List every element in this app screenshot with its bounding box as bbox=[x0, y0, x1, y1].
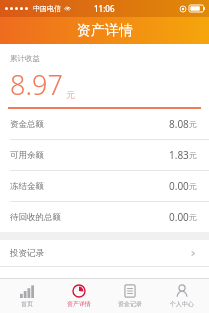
staticText: 资金记录 bbox=[118, 300, 142, 308]
staticText: 待回收的总额 bbox=[10, 212, 61, 223]
staticText: 资产详情 bbox=[67, 300, 91, 308]
button[interactable]: 冻结金额 bbox=[0, 171, 209, 201]
staticText: 累计收益 bbox=[10, 54, 40, 63]
staticText: 可用余额 bbox=[10, 150, 44, 161]
staticText: 首页 bbox=[21, 300, 33, 308]
staticText: 元 bbox=[189, 181, 197, 191]
staticText: 投资记录 bbox=[10, 248, 44, 259]
button[interactable]: 首页 bbox=[3, 279, 51, 313]
button[interactable]: 资金总额 bbox=[0, 109, 209, 139]
staticText: 个人中心 bbox=[170, 300, 194, 308]
staticText: 1.83 bbox=[169, 148, 189, 162]
staticText: 元 bbox=[189, 212, 197, 222]
button[interactable]: 个人中心 bbox=[158, 279, 206, 313]
button[interactable]: 待回收的总额 bbox=[0, 202, 209, 232]
staticText: 中国电信 bbox=[33, 4, 61, 13]
staticText: 0.00 bbox=[169, 179, 189, 193]
staticText: 资产详情 bbox=[77, 22, 133, 40]
staticText: 元 bbox=[189, 150, 197, 160]
staticText: 冻结金额 bbox=[10, 181, 44, 192]
staticText: 元 bbox=[189, 119, 197, 129]
button[interactable]: 可用余额 bbox=[0, 140, 209, 170]
button[interactable]: 资产详情 bbox=[55, 279, 103, 313]
button[interactable]: 投资记录 bbox=[0, 240, 209, 266]
staticText: 元 bbox=[66, 89, 75, 100]
staticText: 8.08 bbox=[169, 117, 189, 131]
staticText: 8.97 bbox=[10, 66, 63, 103]
staticText: 资金总额 bbox=[10, 119, 44, 130]
other: 展开投资记录 bbox=[190, 250, 197, 257]
staticText: 11:06 bbox=[94, 3, 115, 14]
button[interactable]: 资金记录 bbox=[106, 279, 154, 313]
staticText: 0.00 bbox=[169, 210, 189, 224]
